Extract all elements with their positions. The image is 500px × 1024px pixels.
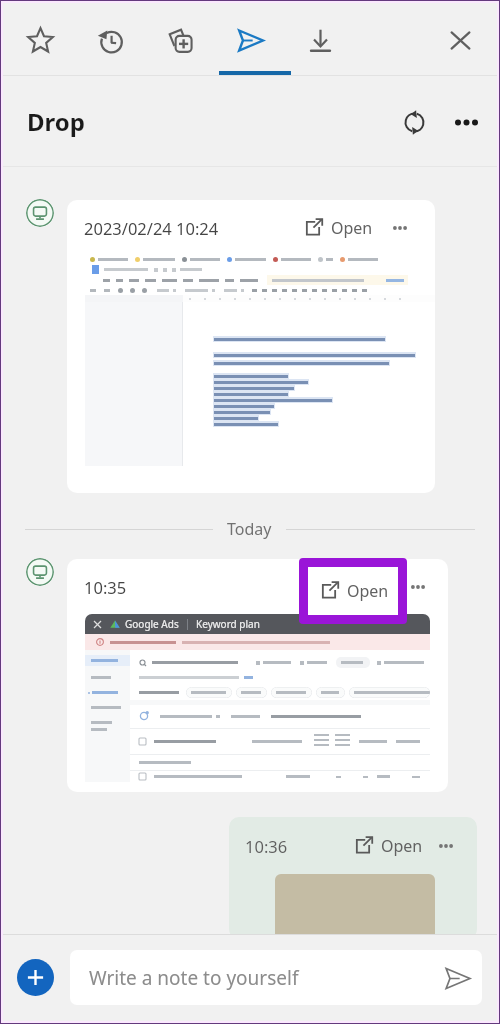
staticText: 10:35 [84, 576, 127, 598]
button[interactable]: Open [318, 580, 389, 602]
button[interactable]: 2023/02/24 10:24 [67, 200, 435, 493]
staticText: Open [347, 580, 389, 602]
staticText: Google Ads [125, 617, 179, 631]
button[interactable]: More [389, 217, 411, 239]
staticText: Drop [27, 105, 85, 138]
button[interactable]: Device [26, 199, 54, 227]
button[interactable]: Favourites [16, 16, 64, 64]
button[interactable]: 10:35 [67, 559, 448, 792]
button[interactable]: Device [26, 558, 54, 586]
staticText: 10:36 [245, 835, 288, 857]
button[interactable]: Sync [394, 102, 434, 142]
button[interactable]: More options [447, 103, 485, 141]
staticText: Keyword plan [196, 617, 260, 631]
button[interactable]: Add [17, 959, 54, 996]
button[interactable]: History [86, 16, 134, 64]
staticText: Open [381, 835, 423, 857]
staticText: Today [227, 518, 272, 540]
button[interactable]: Open [302, 217, 373, 239]
button[interactable]: Open [352, 835, 423, 857]
button[interactable]: Close [436, 16, 484, 64]
button[interactable]: Drop [226, 16, 274, 64]
button[interactable]: Send [432, 953, 482, 1003]
button[interactable]: More [407, 576, 429, 598]
staticText: 2023/02/24 10:24 [84, 217, 219, 239]
button[interactable]: Add to collection [156, 16, 204, 64]
staticText: Write a note to yourself [89, 965, 299, 991]
button[interactable]: Downloads [296, 16, 344, 64]
button[interactable]: Open [308, 567, 398, 615]
button[interactable]: Write a note to yourself [70, 950, 482, 1005]
staticText: Open [331, 217, 373, 239]
button[interactable]: 10:36 [229, 817, 477, 939]
